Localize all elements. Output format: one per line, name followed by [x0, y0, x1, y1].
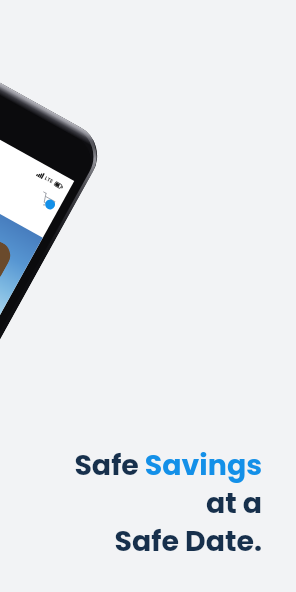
- staticText: Safe Savings at a Safe Date.: [74, 445, 262, 561]
- button[interactable]: [37, 190, 57, 211]
- staticText: LTE: [43, 175, 55, 185]
